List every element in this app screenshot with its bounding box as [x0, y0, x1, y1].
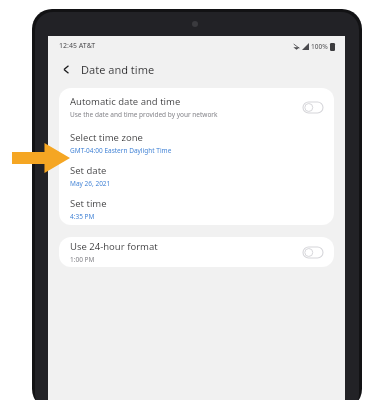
button[interactable]: Back	[48, 56, 345, 82]
button[interactable]: Toggle Automatic date and time	[303, 102, 323, 113]
button[interactable]: Automatic date and time	[59, 88, 334, 126]
staticText: 100%	[311, 42, 328, 51]
staticText: Select time zone	[70, 131, 143, 144]
staticText: Date and time	[81, 62, 155, 77]
button[interactable]: Use 24-hour format	[59, 237, 334, 267]
staticText: May 26, 2021	[70, 179, 111, 188]
staticText: 12:45 AT&T	[59, 41, 96, 51]
button[interactable]: Toggle Use 24-hour format	[303, 247, 323, 258]
staticText: Use the date and time provided by your n…	[70, 110, 218, 119]
staticText: 4:35 PM	[70, 212, 95, 221]
button[interactable]: Set time	[59, 192, 334, 225]
button[interactable]: Select time zone	[59, 126, 334, 159]
staticText: Set time	[70, 197, 107, 210]
staticText: 1:00 PM	[70, 255, 95, 264]
staticText: Set date	[70, 164, 107, 177]
button[interactable]: Set date	[59, 159, 334, 192]
button[interactable]: Back	[58, 61, 74, 77]
staticText: Automatic date and time	[70, 95, 181, 108]
staticText: Use 24-hour format	[70, 240, 158, 253]
staticText: GMT-04:00 Eastern Daylight Time	[70, 146, 172, 155]
